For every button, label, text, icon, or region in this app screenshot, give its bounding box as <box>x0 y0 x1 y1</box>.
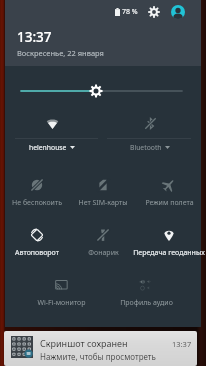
staticText: Нет SIM-карты <box>78 198 128 208</box>
staticText: Нажмите, чтобы просмотреть <box>40 351 156 362</box>
button[interactable]: Режим полета <box>135 178 203 216</box>
button[interactable]: helenhouse <box>7 110 97 158</box>
staticText: Передача геоданных <box>133 248 205 258</box>
staticText: Фонарик <box>88 248 119 258</box>
button[interactable]: Brightness <box>21 82 182 100</box>
staticText: Воскресенье, 22 января <box>17 48 104 58</box>
button[interactable]: User profile <box>171 5 185 19</box>
staticText: Профиль аудио <box>120 298 173 308</box>
staticText: Wi-Fi-монитор <box>37 298 86 308</box>
staticText: Не беспокоить <box>12 198 62 208</box>
staticText: 13:37 <box>17 28 52 46</box>
staticText: 78 % <box>122 7 138 17</box>
button[interactable]: Автоповорот <box>3 228 71 266</box>
button[interactable]: Не беспокоить <box>3 178 71 216</box>
staticText: Режим полета <box>145 198 194 208</box>
button[interactable]: Bluetooth <box>105 110 195 158</box>
staticText: 13:37 <box>172 339 192 349</box>
staticText: Автоповорот <box>15 248 59 258</box>
staticText: helenhouse <box>29 143 67 152</box>
staticText: Bluetooth <box>130 143 162 152</box>
button[interactable]: Фонарик <box>69 228 137 266</box>
button[interactable]: Профиль аудио <box>112 278 180 316</box>
button[interactable]: Wi-Fi-монитор <box>27 278 95 316</box>
button[interactable]: Передача геоданных <box>129 228 206 266</box>
button[interactable]: Скриншот сохранен <box>4 331 197 366</box>
button[interactable]: Нет SIM-карты <box>69 178 137 216</box>
staticText: Скриншот сохранен <box>40 337 128 349</box>
button[interactable]: Settings <box>147 5 161 19</box>
